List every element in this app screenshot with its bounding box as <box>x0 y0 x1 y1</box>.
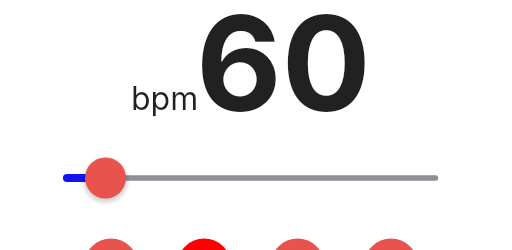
button[interactable]: Tempo slider <box>0 152 512 204</box>
button[interactable]: Beat 1 <box>84 239 138 250</box>
button[interactable]: Beat 3 <box>271 239 325 250</box>
button[interactable]: Beat 4 <box>364 239 418 250</box>
button[interactable]: Tempo, 60 beats per minute <box>0 0 512 132</box>
staticText: bpm <box>131 79 199 118</box>
staticText: 60 <box>196 0 371 115</box>
button[interactable]: Beat 2 <box>177 239 231 250</box>
